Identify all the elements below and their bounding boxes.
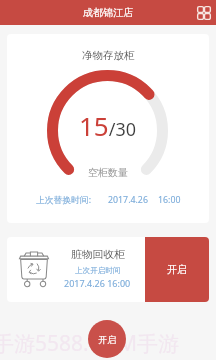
staticText: 2017.4.26 16:00 [64, 277, 131, 289]
staticText: 手游5588.COM手游5588.COM [0, 329, 209, 358]
button[interactable]: 开启 [145, 237, 209, 302]
staticText: 2017.4.26 [108, 194, 148, 206]
staticText: 成都锦江店 [83, 6, 133, 19]
button[interactable]: 开启 [88, 320, 126, 358]
staticText: 16:00 [158, 194, 181, 206]
staticText: 空柜数量 [88, 166, 128, 179]
staticText: 上次开启时间 [75, 266, 121, 276]
staticText: 开启 [167, 263, 187, 276]
staticText: 上次替换时间: [36, 194, 92, 206]
staticText: 15/30 [79, 108, 137, 143]
staticText: 净物存放柜 [82, 49, 135, 62]
button[interactable]: 净物存放柜 [7, 34, 209, 223]
staticText: 开启 [98, 334, 116, 345]
button[interactable]: Apps [197, 6, 211, 20]
staticText: 脏物回收柜 [71, 248, 125, 262]
